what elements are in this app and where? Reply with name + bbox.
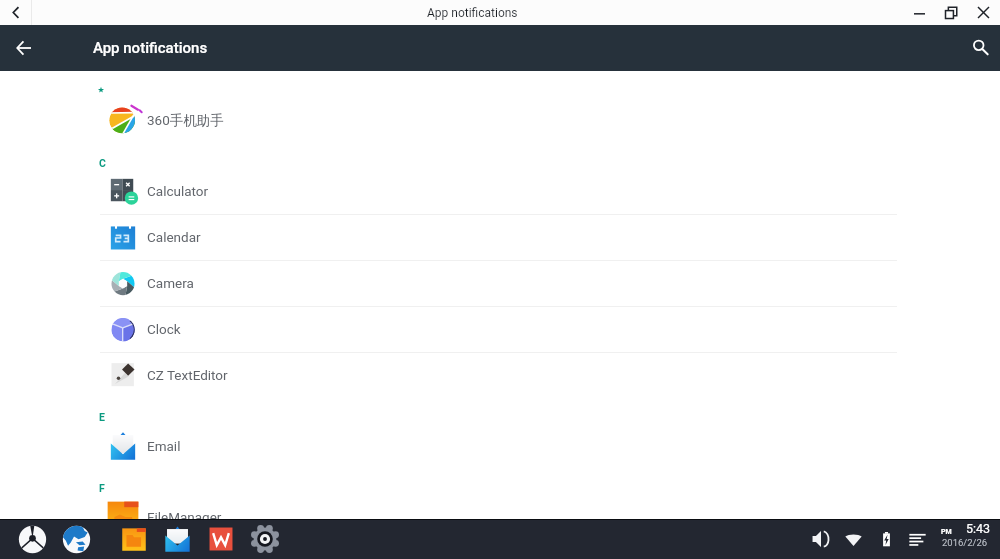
staticText: CZ TextEditor xyxy=(147,367,228,383)
button[interactable]: Search xyxy=(958,27,1000,69)
button[interactable]: Browser xyxy=(57,519,95,559)
staticText: PM xyxy=(941,528,952,536)
staticText: Camera xyxy=(147,275,194,291)
staticText: Email xyxy=(147,438,181,454)
staticText: 360手机助手 xyxy=(147,112,224,129)
button[interactable]: Minimize xyxy=(903,0,935,25)
button[interactable]: Calculator xyxy=(0,168,1000,214)
button[interactable]: WPS Office xyxy=(202,519,240,559)
button[interactable]: PM xyxy=(936,519,1000,559)
staticText: F xyxy=(99,482,105,494)
button[interactable]: Calendar xyxy=(0,214,1000,260)
staticText: E xyxy=(99,411,105,423)
staticText: Calendar xyxy=(147,229,201,245)
staticText: Clock xyxy=(147,321,181,337)
button[interactable]: Mail xyxy=(158,519,196,559)
staticText: 2016/2/26 xyxy=(942,537,988,548)
button[interactable]: Volume xyxy=(807,519,835,559)
button[interactable]: Settings xyxy=(246,519,284,559)
staticText: App notifications xyxy=(427,6,518,20)
staticText: Calculator xyxy=(147,183,209,199)
button[interactable]: Navigate up xyxy=(1,25,47,71)
button[interactable]: Files xyxy=(115,519,153,559)
button[interactable]: Email xyxy=(0,423,1000,469)
button[interactable]: Camera xyxy=(0,260,1000,306)
button[interactable]: FileManager xyxy=(0,494,1000,540)
button[interactable]: Battery xyxy=(872,519,900,559)
button[interactable]: Maximize xyxy=(935,0,966,25)
button[interactable]: Notifications xyxy=(903,519,931,559)
staticText: 5:43 xyxy=(966,521,991,536)
button[interactable]: Clock xyxy=(0,306,1000,352)
staticText: FileManager xyxy=(147,509,222,525)
staticText: C xyxy=(99,157,106,169)
button[interactable]: Home xyxy=(13,519,51,559)
button[interactable]: 360手机助手 xyxy=(0,97,1000,143)
button[interactable]: Wi-Fi xyxy=(839,519,867,559)
button[interactable]: Close xyxy=(966,0,1000,25)
button[interactable]: CZ TextEditor xyxy=(0,352,1000,398)
staticText: App notifications xyxy=(93,39,208,57)
button[interactable]: Back xyxy=(0,0,31,25)
